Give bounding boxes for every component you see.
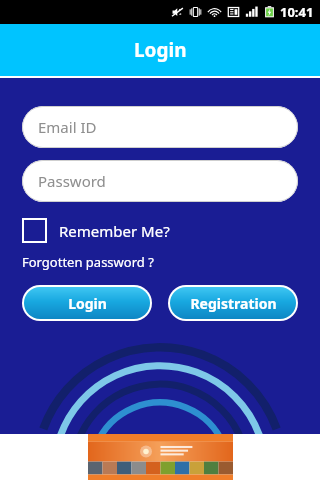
button[interactable]: Forgotten password ? [22,253,154,271]
button[interactable]: Remember Me? [22,218,170,243]
staticText: Login [68,294,107,313]
staticText: Login [134,37,187,63]
staticText: Remember Me? [59,221,170,241]
button[interactable]: Email ID [22,106,298,148]
button[interactable]: Advertisement [88,434,233,480]
staticText: 10:41 [280,3,314,21]
staticText: Email ID [38,117,97,137]
staticText: Registration [190,294,277,313]
button[interactable]: Login [24,287,150,319]
button[interactable]: Password [22,160,298,202]
button[interactable]: Registration [170,287,296,319]
staticText: Password [38,171,106,191]
